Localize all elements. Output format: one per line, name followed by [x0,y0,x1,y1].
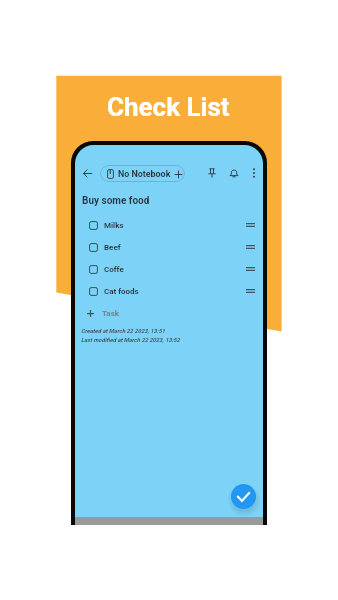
staticText: Milks [104,221,124,230]
button[interactable]: Beef [75,236,263,258]
staticText: No Notebook [118,169,171,179]
button[interactable]: Save [231,484,256,509]
button[interactable]: More options [244,163,263,183]
button[interactable]: Cat foods [75,280,263,302]
button[interactable]: Notifications [224,163,244,183]
staticText: Task [102,309,120,318]
button[interactable]: Task [75,302,263,324]
button[interactable]: No Notebook [100,165,185,182]
button[interactable]: Pin [202,163,222,183]
button[interactable]: Coffe [75,258,263,280]
button[interactable]: Back [77,163,97,183]
staticText: Coffe [104,265,124,274]
staticText: Beef [104,243,121,252]
staticText: Buy some food [82,195,150,207]
staticText: Cat foods [104,287,139,296]
staticText: Created at March 22 2023, 13:51 Last mod… [81,328,180,343]
staticText: Check List [107,92,230,122]
button[interactable]: Milks [75,214,263,236]
